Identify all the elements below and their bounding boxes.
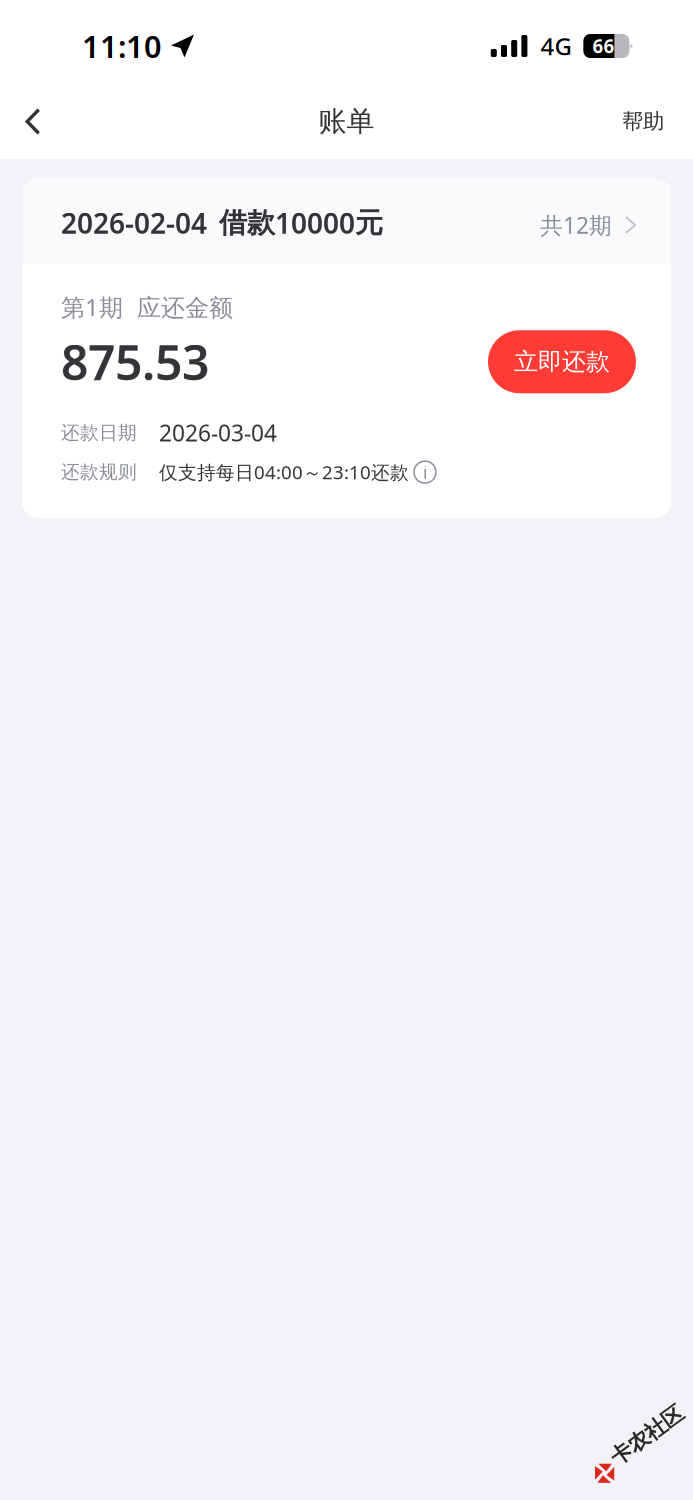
staticText: 借款 <box>219 206 275 240</box>
staticText: 10000 <box>275 204 355 242</box>
staticText: 875.53 <box>61 330 209 394</box>
staticText: 4G <box>540 30 571 62</box>
staticText: 还款日期 <box>61 421 137 444</box>
button[interactable]: 立即还款 <box>488 330 636 393</box>
staticText: 还款规则 <box>61 461 137 483</box>
staticText: 卡农社区 <box>607 1429 691 1455</box>
staticText: 账单 <box>318 104 374 139</box>
staticText: 帮助 <box>622 108 664 135</box>
staticText: 11:10 <box>82 26 162 66</box>
staticText: 元 <box>355 206 383 240</box>
button[interactable]: 2026-02-04 <box>22 178 671 264</box>
staticText: 66 <box>592 34 614 58</box>
button[interactable]: Back <box>2 84 64 158</box>
button[interactable]: 帮助 <box>608 84 678 158</box>
staticText: 仅支持每日04:00～23:10还款 <box>159 460 409 484</box>
staticText: 立即还款 <box>514 347 610 376</box>
staticText: 第1期 应还金额 <box>61 291 233 323</box>
staticText: 2026-03-04 <box>159 418 277 448</box>
staticText: 2026-02-04 <box>61 204 207 242</box>
staticText: 共12期 <box>540 210 612 240</box>
button[interactable]: Repayment rule info <box>409 461 436 483</box>
staticText: i <box>423 461 427 484</box>
